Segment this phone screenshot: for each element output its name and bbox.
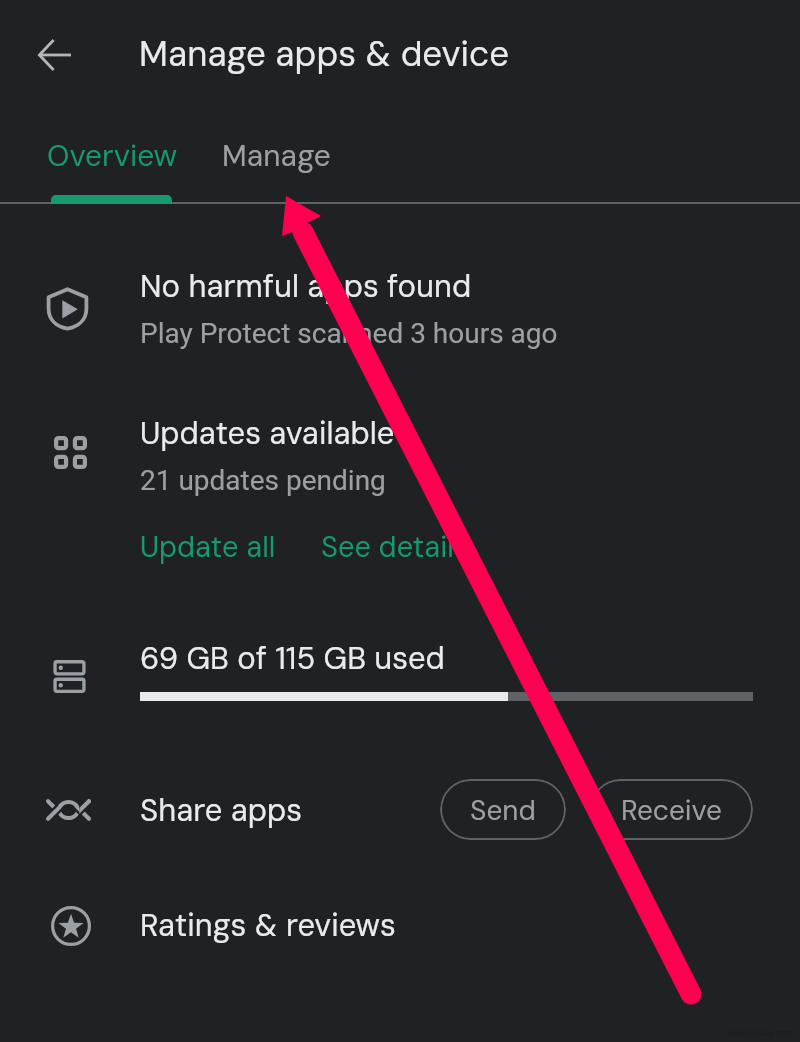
button[interactable]: Overview <box>34 118 190 196</box>
staticText: See details <box>321 528 469 566</box>
staticText: Play Protect scanned 3 hours ago <box>140 317 558 350</box>
staticText: Manage <box>222 136 331 175</box>
button[interactable]: Update all <box>140 528 276 566</box>
button[interactable]: Receive <box>590 779 753 840</box>
staticText: Receive <box>621 792 722 828</box>
staticText: Share apps <box>140 790 303 830</box>
button[interactable]: Ratings & reviews <box>0 875 800 975</box>
button[interactable]: No harmful apps found <box>0 245 800 370</box>
button[interactable]: 69 GB of 115 GB used <box>0 620 800 720</box>
staticText: Update all <box>140 528 276 566</box>
button[interactable]: See details <box>321 528 469 566</box>
staticText: 69 GB of 115 GB used <box>140 638 445 678</box>
staticText: Ratings & reviews <box>140 905 396 945</box>
staticText: Overview <box>47 136 178 175</box>
staticText: Send <box>470 792 536 828</box>
button[interactable]: Share apps <box>0 760 800 860</box>
button[interactable]: Send <box>440 779 566 840</box>
staticText: 21 updates pending <box>140 464 386 497</box>
button[interactable]: Manage <box>200 118 352 196</box>
button[interactable]: Back <box>28 28 82 82</box>
staticText: No harmful apps found <box>140 266 472 306</box>
staticText: Updates available <box>140 413 395 453</box>
button[interactable]: Updates available <box>0 400 800 510</box>
staticText: Manage apps & device <box>139 31 509 77</box>
